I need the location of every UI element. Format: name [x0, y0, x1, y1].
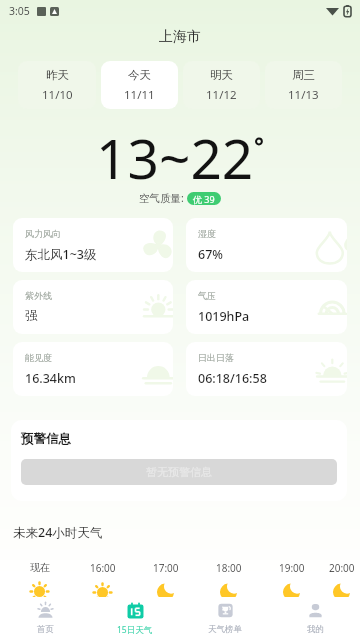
button[interactable]: 风力风向: [13, 218, 173, 272]
staticText: 紫外线: [25, 290, 52, 301]
button[interactable]: 20:00: [323, 561, 360, 602]
button[interactable]: 首页: [0, 597, 90, 640]
staticText: 现在: [30, 561, 50, 574]
button[interactable]: 优 39: [187, 192, 221, 205]
button[interactable]: 周三: [265, 61, 342, 109]
button[interactable]: 明天: [183, 61, 260, 109]
button[interactable]: 16:00: [71, 561, 134, 602]
staticText: 昨天: [46, 68, 69, 82]
staticText: 16.34km: [25, 370, 76, 387]
staticText: 17:00: [153, 561, 179, 575]
staticText: 预警信息: [21, 431, 71, 447]
staticText: 13~22: [96, 120, 254, 195]
button[interactable]: 能见度: [13, 342, 173, 396]
staticText: 我的: [307, 624, 324, 635]
staticText: 11/12: [206, 87, 237, 103]
staticText: 气压: [198, 290, 216, 301]
staticText: 首页: [37, 624, 54, 635]
button[interactable]: 15日天气: [90, 597, 180, 640]
staticText: 优 39: [193, 193, 215, 205]
staticText: 天气榜单: [208, 624, 242, 635]
staticText: 1019hPa: [198, 308, 250, 325]
button[interactable]: 气压: [186, 280, 347, 334]
staticText: 3:05: [9, 4, 30, 18]
staticText: 11/10: [42, 87, 73, 103]
button[interactable]: 暂无预警信息: [21, 459, 337, 485]
staticText: 周三: [292, 68, 315, 82]
staticText: 今天: [128, 68, 151, 82]
button[interactable]: 18:00: [197, 561, 260, 602]
staticText: 空气质量:: [139, 191, 184, 205]
staticText: 明天: [210, 68, 233, 82]
button[interactable]: 天气榜单: [180, 597, 270, 640]
button[interactable]: 湿度: [186, 218, 347, 272]
staticText: 20:00: [329, 561, 355, 575]
button[interactable]: 现在: [8, 561, 71, 601]
staticText: 19:00: [279, 561, 305, 575]
button[interactable]: 19:00: [260, 561, 323, 602]
staticText: 强: [25, 308, 38, 324]
staticText: 湿度: [198, 228, 216, 239]
button[interactable]: 昨天: [18, 61, 96, 109]
button[interactable]: 我的: [270, 597, 360, 640]
button[interactable]: 紫外线: [13, 280, 173, 334]
button[interactable]: 17:00: [134, 561, 197, 602]
staticText: 未来24小时天气: [13, 524, 103, 541]
staticText: 上海市: [159, 28, 201, 46]
staticText: 67%: [198, 246, 223, 263]
button[interactable]: 今天: [101, 61, 178, 109]
staticText: 11/11: [124, 87, 155, 103]
staticText: 风力风向: [25, 228, 61, 239]
staticText: 16:00: [90, 561, 116, 575]
staticText: 东北风1~3级: [25, 246, 97, 263]
staticText: 日出日落: [198, 352, 234, 363]
button[interactable]: 日出日落: [186, 342, 347, 396]
staticText: 暂无预警信息: [146, 465, 212, 479]
staticText: 18:00: [216, 561, 242, 575]
staticText: 能见度: [25, 352, 52, 363]
staticText: 15日天气: [117, 624, 153, 636]
staticText: 11/13: [288, 87, 319, 103]
staticText: 06:18/16:58: [198, 370, 267, 387]
